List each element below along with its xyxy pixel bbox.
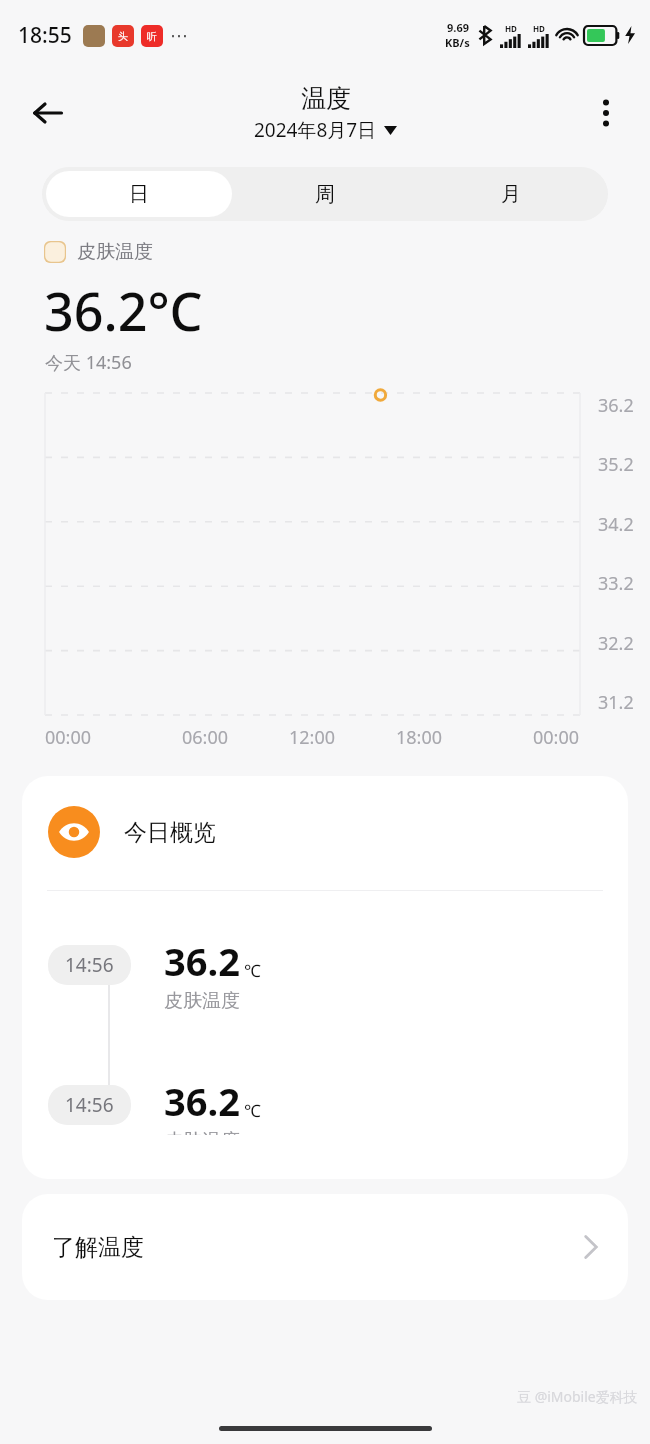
staticText: 32.2 [598,631,634,656]
staticText: 00:00 [45,725,92,750]
staticText: 今日概览 [124,818,216,847]
staticText: 2024年8月7日 [254,117,377,143]
button[interactable]: 了解温度 [22,1194,628,1300]
staticText: 皮肤温度 [164,989,240,1013]
staticText: 36.2 [164,935,240,987]
button[interactable]: Back [22,87,74,139]
staticText: 12:00 [289,725,336,750]
staticText: 头 [118,30,128,43]
button[interactable]: 周 [232,171,418,217]
button[interactable]: 14:56 [22,935,628,1013]
staticText: 皮肤温度 [77,240,153,264]
staticText: 周 [315,182,335,207]
button[interactable]: 月 [418,171,604,217]
staticText: 36.2 [598,393,634,418]
button[interactable]: 温度 [254,83,397,143]
staticText: 33.2 [598,571,634,596]
staticText: 温度 [301,83,351,114]
button[interactable]: 日 [46,171,232,217]
staticText: 36.2°C [44,275,203,346]
staticText: 18:00 [396,725,443,750]
staticText: 日 [129,182,149,207]
button[interactable]: 14:56 [22,1075,628,1135]
staticText: 18:55 [18,21,72,50]
staticText: ℃ [244,959,261,982]
staticText: 14:56 [65,952,114,978]
staticText: HD [533,23,545,34]
staticText: HD [505,23,517,34]
button[interactable]: 今日概览 [48,806,216,858]
staticText: 9.69 [447,20,469,35]
staticText: 了解温度 [52,1233,144,1262]
staticText: 14:56 [65,1092,114,1118]
staticText: KB/s [445,35,470,50]
staticText: 听 [147,30,157,43]
staticText: 06:00 [182,725,229,750]
staticText: 00:00 [533,725,580,750]
staticText: 35.2 [598,452,634,477]
staticText: ℃ [244,1099,261,1122]
staticText: ⋯ [170,25,188,46]
staticText: 31.2 [598,690,634,715]
button[interactable]: More options [582,89,630,137]
staticText: 今天 14:56 [45,350,132,375]
staticText: 34.2 [598,512,634,537]
staticText: 皮肤温度 [164,1129,240,1135]
staticText: 豆 @iMobile爱科技 [517,1387,638,1406]
staticText: 月 [501,182,521,207]
staticText: 36.2 [164,1075,240,1127]
